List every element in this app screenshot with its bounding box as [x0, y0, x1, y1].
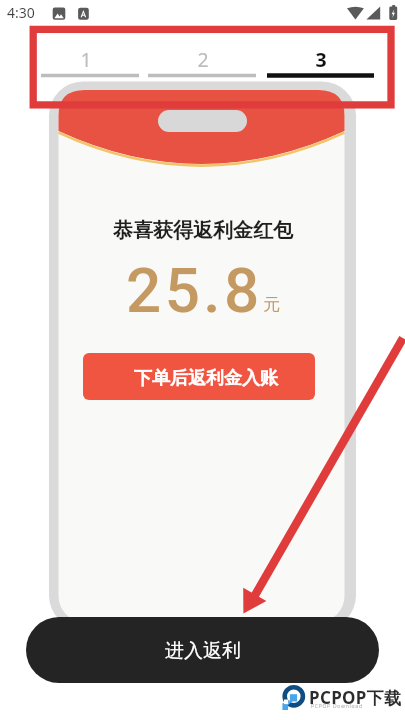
button[interactable]: 下单后返利金入账 [83, 353, 315, 400]
staticText: 4:30 [7, 3, 35, 22]
staticText: 下单后返利金入账 [134, 367, 278, 390]
button[interactable]: 进入返利 [26, 617, 379, 683]
button[interactable]: 3 [296, 44, 346, 74]
staticText: 进入返利 [165, 639, 241, 663]
staticText: PCPOP Download [311, 703, 363, 710]
button[interactable]: 1 [61, 44, 111, 74]
button[interactable]: 2 [178, 44, 228, 74]
staticText: 2 [197, 46, 209, 73]
staticText: 元 [263, 294, 280, 315]
staticText: 恭喜获得返利金红包 [113, 218, 293, 243]
staticText: PCPOP下载 [309, 686, 402, 709]
staticText: 25.8 [126, 254, 263, 327]
staticText: 3 [315, 46, 327, 73]
staticText: 1 [80, 46, 92, 73]
